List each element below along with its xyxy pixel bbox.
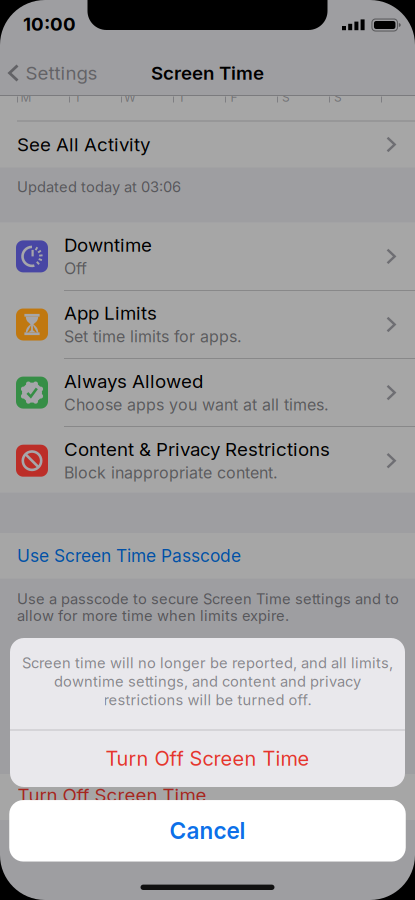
staticText: F <box>230 90 237 105</box>
staticText: T <box>178 90 186 105</box>
staticText: Turn Off Screen Time <box>105 747 309 770</box>
staticText: Always Allowed <box>64 370 203 392</box>
staticText: Use a passcode to secure Screen Time set… <box>17 590 399 608</box>
button[interactable]: See All Activity <box>0 121 415 167</box>
staticText: Block inappropriate content. <box>64 463 278 482</box>
staticText: downtime settings, and content and priva… <box>54 673 361 690</box>
staticText: Cancel <box>169 817 245 844</box>
button[interactable]: Turn Off Screen Time <box>0 774 415 820</box>
staticText: Updated today at 03:06 <box>17 178 181 196</box>
staticText: allow for more time when limits expire. <box>17 607 289 624</box>
staticText: Use Screen Time Passcode <box>17 546 241 566</box>
staticText: Choose apps you want at all times. <box>64 395 329 414</box>
staticText: Downtime <box>64 234 152 256</box>
staticText: S <box>334 90 342 105</box>
staticText: W <box>124 90 136 105</box>
staticText: App Limits <box>64 302 157 324</box>
staticText: Screen time will no longer be reported, … <box>22 654 393 672</box>
staticText: Screen Time <box>151 62 264 84</box>
staticText: Settings <box>25 62 97 84</box>
staticText: S <box>282 90 290 105</box>
button[interactable]: Always Allowed <box>0 359 415 427</box>
staticText: See All Activity <box>17 133 150 155</box>
button[interactable]: Turn Off Screen Time <box>10 730 405 787</box>
staticText: 10:00 <box>23 13 76 35</box>
staticText: Set time limits for apps. <box>64 327 242 346</box>
button[interactable]: Downtime <box>0 222 415 290</box>
staticText: restrictions will be turned off. <box>103 691 311 709</box>
staticText: Content & Privacy Restrictions <box>64 438 330 460</box>
staticText: Turn Off Screen Time <box>17 784 206 806</box>
button[interactable]: Use Screen Time Passcode <box>0 533 415 579</box>
button[interactable]: App Limits <box>0 290 415 358</box>
button[interactable]: Content & Privacy Restrictions <box>0 427 415 495</box>
staticText: M <box>20 90 31 105</box>
button[interactable]: Cancel <box>9 800 406 861</box>
staticText: T <box>74 90 82 105</box>
button[interactable]: Back <box>6 53 97 93</box>
staticText: Off <box>64 259 87 278</box>
